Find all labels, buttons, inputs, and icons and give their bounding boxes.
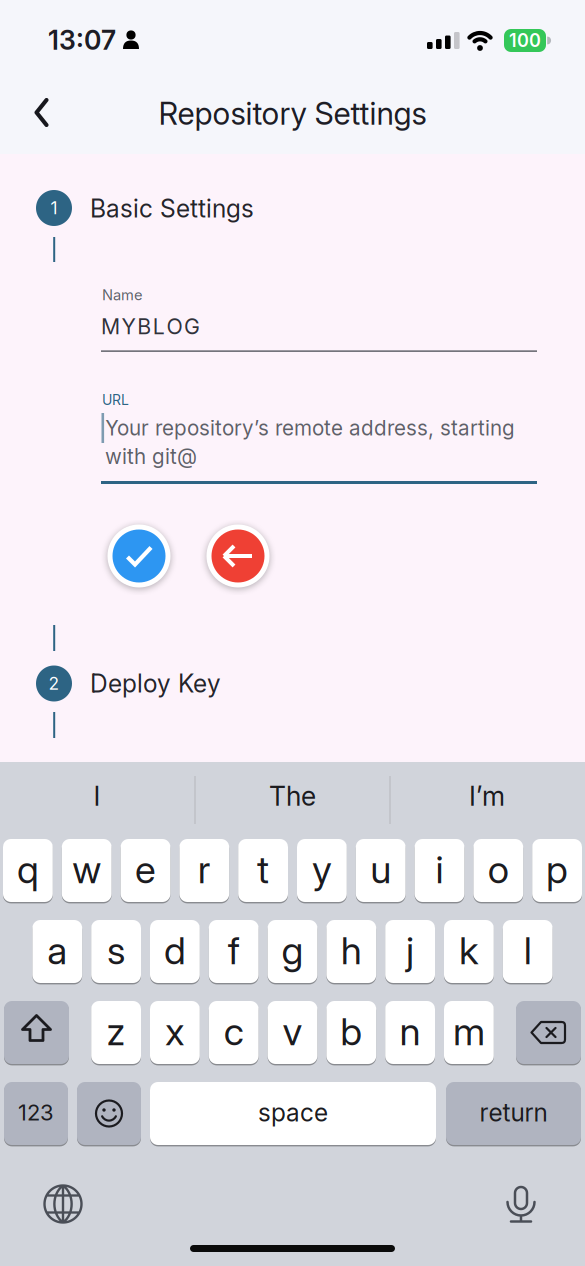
staticText: with git@ bbox=[105, 444, 197, 469]
staticText: L bbox=[153, 314, 165, 339]
staticText: Name bbox=[102, 286, 143, 304]
staticText: l bbox=[524, 927, 532, 973]
button[interactable]: v bbox=[268, 1001, 317, 1064]
button[interactable]: m bbox=[444, 1001, 494, 1064]
staticText: O bbox=[166, 314, 182, 339]
staticText: 13:07 bbox=[48, 24, 116, 56]
button[interactable]: z bbox=[91, 1001, 141, 1064]
button[interactable]: i bbox=[415, 839, 464, 902]
staticText: e bbox=[135, 846, 156, 892]
staticText: I bbox=[93, 780, 100, 812]
staticText: z bbox=[107, 1008, 126, 1054]
button[interactable]: r bbox=[179, 839, 229, 902]
button[interactable]: h bbox=[326, 920, 376, 983]
staticText: return bbox=[479, 1098, 547, 1127]
staticText: u bbox=[370, 846, 391, 892]
staticText: M bbox=[101, 314, 120, 339]
staticText: q bbox=[17, 846, 39, 892]
button[interactable]: Emoji bbox=[77, 1082, 141, 1145]
button[interactable]: Delete bbox=[516, 1001, 581, 1064]
button[interactable]: q bbox=[3, 839, 53, 902]
staticText: b bbox=[340, 1008, 362, 1054]
staticText: G bbox=[184, 314, 200, 339]
staticText: t bbox=[257, 846, 269, 892]
button[interactable]: p bbox=[532, 839, 582, 902]
staticText: 1 bbox=[50, 197, 57, 218]
staticText: 100 bbox=[509, 30, 541, 51]
button[interactable]: space bbox=[150, 1082, 436, 1145]
button[interactable]: f bbox=[209, 920, 259, 983]
staticText: i bbox=[435, 846, 443, 892]
staticText: Y bbox=[122, 314, 136, 339]
staticText: x bbox=[165, 1008, 185, 1054]
button[interactable]: d bbox=[150, 920, 200, 983]
button[interactable]: The bbox=[199, 770, 385, 822]
staticText: B bbox=[137, 314, 151, 339]
button[interactable]: 123 bbox=[4, 1082, 68, 1145]
staticText: v bbox=[282, 1008, 302, 1054]
button[interactable]: l bbox=[503, 920, 553, 983]
button[interactable]: n bbox=[385, 1001, 435, 1064]
button[interactable]: s bbox=[91, 920, 141, 983]
button[interactable]: t bbox=[238, 839, 288, 902]
button[interactable]: y bbox=[297, 839, 347, 902]
staticText: s bbox=[107, 927, 125, 973]
staticText: I’m bbox=[469, 780, 505, 812]
staticText: j bbox=[406, 927, 414, 973]
button[interactable]: Dictation bbox=[493, 1176, 549, 1232]
button[interactable]: a bbox=[32, 920, 82, 983]
button[interactable]: Back bbox=[19, 90, 63, 134]
staticText: g bbox=[281, 927, 303, 973]
button[interactable]: b bbox=[326, 1001, 376, 1064]
button[interactable]: c bbox=[209, 1001, 259, 1064]
button[interactable]: j bbox=[385, 920, 435, 983]
button[interactable]: 2 bbox=[36, 661, 549, 705]
staticText: space bbox=[258, 1098, 328, 1127]
staticText: n bbox=[400, 1008, 421, 1054]
staticText: m bbox=[453, 1008, 485, 1054]
button[interactable]: g bbox=[268, 920, 317, 983]
staticText: f bbox=[228, 927, 240, 973]
button[interactable]: 1 bbox=[36, 186, 549, 230]
staticText: URL bbox=[102, 391, 129, 408]
button[interactable]: Cancel bbox=[206, 524, 269, 587]
staticText: The bbox=[269, 780, 316, 812]
staticText: r bbox=[198, 846, 211, 892]
button[interactable]: I bbox=[4, 770, 190, 822]
staticText: o bbox=[488, 846, 509, 892]
button[interactable]: Continue bbox=[107, 524, 170, 587]
button[interactable]: URL bbox=[101, 392, 537, 487]
staticText: d bbox=[164, 927, 186, 973]
button[interactable]: o bbox=[473, 839, 523, 902]
staticText: Repository Settings bbox=[158, 95, 426, 132]
button[interactable]: I’m bbox=[394, 770, 580, 822]
staticText: y bbox=[312, 846, 332, 892]
button[interactable]: Shift bbox=[4, 1001, 69, 1064]
button[interactable]: k bbox=[444, 920, 494, 983]
staticText: Deploy Key bbox=[90, 669, 221, 698]
staticText: Basic Settings bbox=[90, 194, 254, 223]
staticText: c bbox=[224, 1008, 244, 1054]
staticText: Your repository’s remote address, starti… bbox=[105, 415, 515, 440]
staticText: w bbox=[72, 846, 101, 892]
button[interactable]: Next keyboard bbox=[35, 1176, 91, 1232]
staticText: 2 bbox=[48, 673, 59, 694]
staticText: a bbox=[47, 927, 67, 973]
button[interactable]: Name bbox=[101, 284, 537, 352]
button[interactable]: w bbox=[62, 839, 112, 902]
staticText: p bbox=[546, 846, 568, 892]
button[interactable]: x bbox=[150, 1001, 200, 1064]
button[interactable]: return bbox=[446, 1082, 581, 1145]
button[interactable]: u bbox=[356, 839, 406, 902]
staticText: 123 bbox=[18, 1099, 54, 1126]
staticText: h bbox=[341, 927, 362, 973]
button[interactable]: e bbox=[121, 839, 170, 902]
staticText: k bbox=[459, 927, 479, 973]
